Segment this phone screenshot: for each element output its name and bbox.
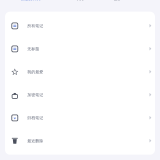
staticText: 归档笔记 (27, 115, 43, 120)
staticText: 无标题 (27, 46, 39, 51)
staticText: 加密笔记 (27, 92, 43, 97)
button[interactable]: 所有笔记 (5, 14, 155, 37)
button[interactable]: 无标题 (5, 37, 155, 60)
staticText: 工作 (113, 0, 121, 1)
staticText: 新建文件夹 (20, 0, 40, 1)
button[interactable]: 新建文件夹 (20, 0, 40, 1)
button[interactable]: 最近删除 (5, 129, 155, 152)
button[interactable]: 我的最爱 (5, 60, 155, 83)
button[interactable]: 个人 (75, 0, 83, 1)
staticText: 最近删除 (27, 138, 43, 143)
staticText: 我的最爱 (27, 69, 43, 74)
button[interactable]: 归档笔记 (5, 106, 155, 129)
button[interactable]: 加密笔记 (5, 83, 155, 106)
staticText: 个人 (75, 0, 83, 1)
button[interactable]: 工作 (113, 0, 121, 1)
staticText: 所有笔记 (27, 23, 43, 28)
